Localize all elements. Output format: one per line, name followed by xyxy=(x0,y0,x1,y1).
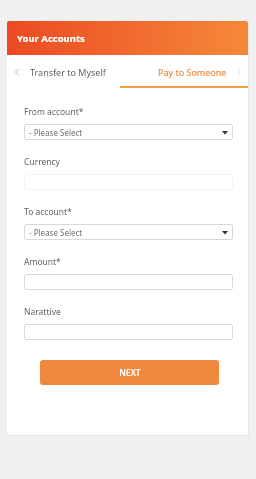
staticText: Currency xyxy=(24,156,60,168)
button[interactable]: - Please Select xyxy=(24,224,233,240)
button[interactable]: Pay to Someone xyxy=(120,55,248,88)
button[interactable] xyxy=(24,174,233,190)
staticText: Pay to Someone xyxy=(158,66,227,78)
button[interactable] xyxy=(24,324,233,340)
button[interactable]: Previous tabs xyxy=(9,64,25,80)
staticText: - Please Select xyxy=(29,127,83,138)
staticText: To account* xyxy=(24,206,72,218)
button[interactable] xyxy=(24,274,233,290)
staticText: - Please Select xyxy=(29,227,83,238)
staticText: From account* xyxy=(24,106,84,118)
staticText: NEXT xyxy=(119,367,141,379)
button[interactable]: More tabs xyxy=(231,64,247,80)
button[interactable]: Transfer to Myself xyxy=(24,55,112,88)
staticText: Your Accounts xyxy=(17,32,85,45)
staticText: Amount* xyxy=(24,256,61,268)
button[interactable]: NEXT xyxy=(40,360,219,385)
staticText: Narattive xyxy=(24,306,61,318)
button[interactable]: - Please Select xyxy=(24,124,233,140)
staticText: Transfer to Myself xyxy=(30,66,106,78)
